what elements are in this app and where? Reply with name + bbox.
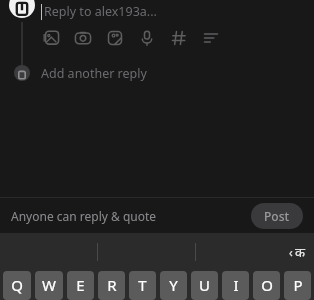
button[interactable]: Add another reply bbox=[0, 62, 314, 84]
button[interactable]: Q bbox=[3, 271, 31, 300]
button[interactable]: P bbox=[284, 271, 311, 300]
button[interactable]: W bbox=[35, 271, 63, 300]
button[interactable]: U bbox=[191, 271, 218, 300]
button[interactable]: Add image bbox=[41, 28, 61, 48]
button[interactable]: Record audio bbox=[137, 28, 157, 48]
staticText: Anyone can reply & quote bbox=[11, 208, 157, 224]
button[interactable]: Add poll bbox=[201, 28, 221, 48]
button[interactable]: Anyone can reply & quote bbox=[11, 208, 157, 224]
button[interactable]: I bbox=[222, 271, 249, 300]
staticText: Y bbox=[169, 275, 178, 295]
staticText: O bbox=[261, 275, 273, 295]
staticText: I bbox=[233, 275, 239, 295]
button[interactable]: Take photo bbox=[73, 28, 93, 48]
staticText: Q bbox=[11, 275, 23, 295]
button[interactable]: Y bbox=[160, 271, 187, 300]
staticText: T bbox=[138, 275, 147, 295]
staticText: Add another reply bbox=[41, 65, 147, 82]
button[interactable]: E bbox=[67, 271, 94, 300]
staticText: P bbox=[293, 275, 303, 295]
button[interactable]: Post bbox=[251, 203, 303, 229]
staticText: क bbox=[295, 243, 305, 261]
button[interactable]: T bbox=[129, 271, 156, 300]
button[interactable]: O bbox=[253, 271, 280, 300]
staticText: Reply to alex193a... bbox=[44, 3, 157, 20]
staticText: E bbox=[76, 275, 85, 295]
staticText: W bbox=[42, 275, 56, 295]
button[interactable]: Add tag bbox=[169, 28, 189, 48]
staticText: U bbox=[199, 275, 210, 295]
staticText: R bbox=[107, 275, 117, 295]
button[interactable]: R bbox=[98, 271, 125, 300]
staticText: Post bbox=[264, 208, 290, 224]
button[interactable]: Change language bbox=[289, 243, 305, 261]
button[interactable]: Add GIF bbox=[105, 28, 125, 48]
staticText: ‹ bbox=[289, 244, 293, 260]
